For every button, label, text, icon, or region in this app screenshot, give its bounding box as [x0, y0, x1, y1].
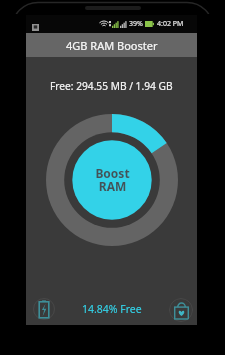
button[interactable]: More apps — [169, 298, 193, 322]
button[interactable]: Battery saver — [32, 297, 56, 321]
staticText: 14.84% Free — [82, 302, 142, 316]
staticText: 4GB RAM Booster — [66, 38, 158, 53]
staticText: 39% — [129, 19, 143, 29]
staticText: Boost RAM — [95, 165, 130, 195]
button[interactable]: Boost RAM — [72, 140, 152, 220]
staticText: 4:02 PM — [157, 19, 184, 29]
staticText: Free: 294.55 MB / 1.94 GB — [50, 79, 173, 93]
